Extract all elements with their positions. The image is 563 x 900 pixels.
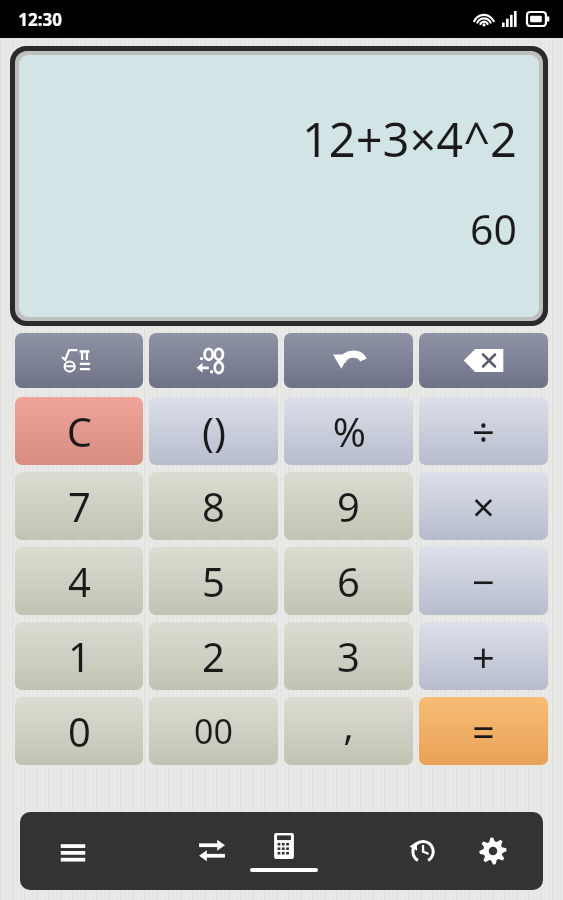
staticText: 00 <box>194 708 233 754</box>
button[interactable]: 7 <box>15 472 143 540</box>
staticText: 6 <box>337 554 360 608</box>
staticText: 8 <box>202 479 225 533</box>
staticText: 7 <box>68 479 91 533</box>
button[interactable]: Calculator <box>248 812 320 890</box>
staticText: 2 <box>202 629 225 683</box>
button[interactable]: − <box>419 547 548 615</box>
staticText: C <box>66 404 92 458</box>
staticText: % <box>332 404 366 458</box>
button[interactable]: 5 <box>149 547 278 615</box>
staticText: 1 <box>68 629 91 683</box>
staticText: = <box>472 704 495 758</box>
button[interactable]: 9 <box>284 472 413 540</box>
staticText: 0 <box>68 704 91 758</box>
button[interactable]: 00 <box>149 697 278 765</box>
staticText: 5 <box>202 554 225 608</box>
staticText: 60 <box>470 201 517 257</box>
staticText: 9 <box>337 479 360 533</box>
button[interactable]: History <box>385 812 457 890</box>
button[interactable]: Backspace <box>419 333 548 388</box>
staticText: 4 <box>68 554 91 608</box>
staticText: () <box>202 404 226 458</box>
button[interactable]: Menu <box>34 812 111 890</box>
staticText: ÷ <box>472 404 495 458</box>
button[interactable]: 4 <box>15 547 143 615</box>
button[interactable]: C <box>15 397 143 465</box>
staticText: 12+3×4^2 <box>301 107 517 171</box>
button[interactable]: Decimal places <box>149 333 278 388</box>
staticText: , <box>343 697 354 751</box>
button[interactable]: Converter <box>176 812 248 890</box>
button[interactable]: 1 <box>15 622 143 690</box>
button[interactable]: = <box>419 697 548 765</box>
button[interactable]: () <box>149 397 278 465</box>
button[interactable]: 2 <box>149 622 278 690</box>
button[interactable]: 3 <box>284 622 413 690</box>
button[interactable]: 6 <box>284 547 413 615</box>
staticText: − <box>472 554 495 608</box>
button[interactable]: Scientific functions <box>15 333 143 388</box>
button[interactable]: % <box>284 397 413 465</box>
button[interactable]: Settings <box>457 812 529 890</box>
button[interactable]: + <box>419 622 548 690</box>
button[interactable]: , <box>284 697 413 765</box>
staticText: 3 <box>337 629 360 683</box>
button[interactable]: 8 <box>149 472 278 540</box>
button[interactable]: Undo <box>284 333 413 388</box>
button[interactable]: ÷ <box>419 397 548 465</box>
staticText: 12:30 <box>18 8 62 31</box>
staticText: × <box>472 479 495 533</box>
button[interactable]: × <box>419 472 548 540</box>
staticText: + <box>472 629 495 683</box>
button[interactable]: 0 <box>15 697 143 765</box>
